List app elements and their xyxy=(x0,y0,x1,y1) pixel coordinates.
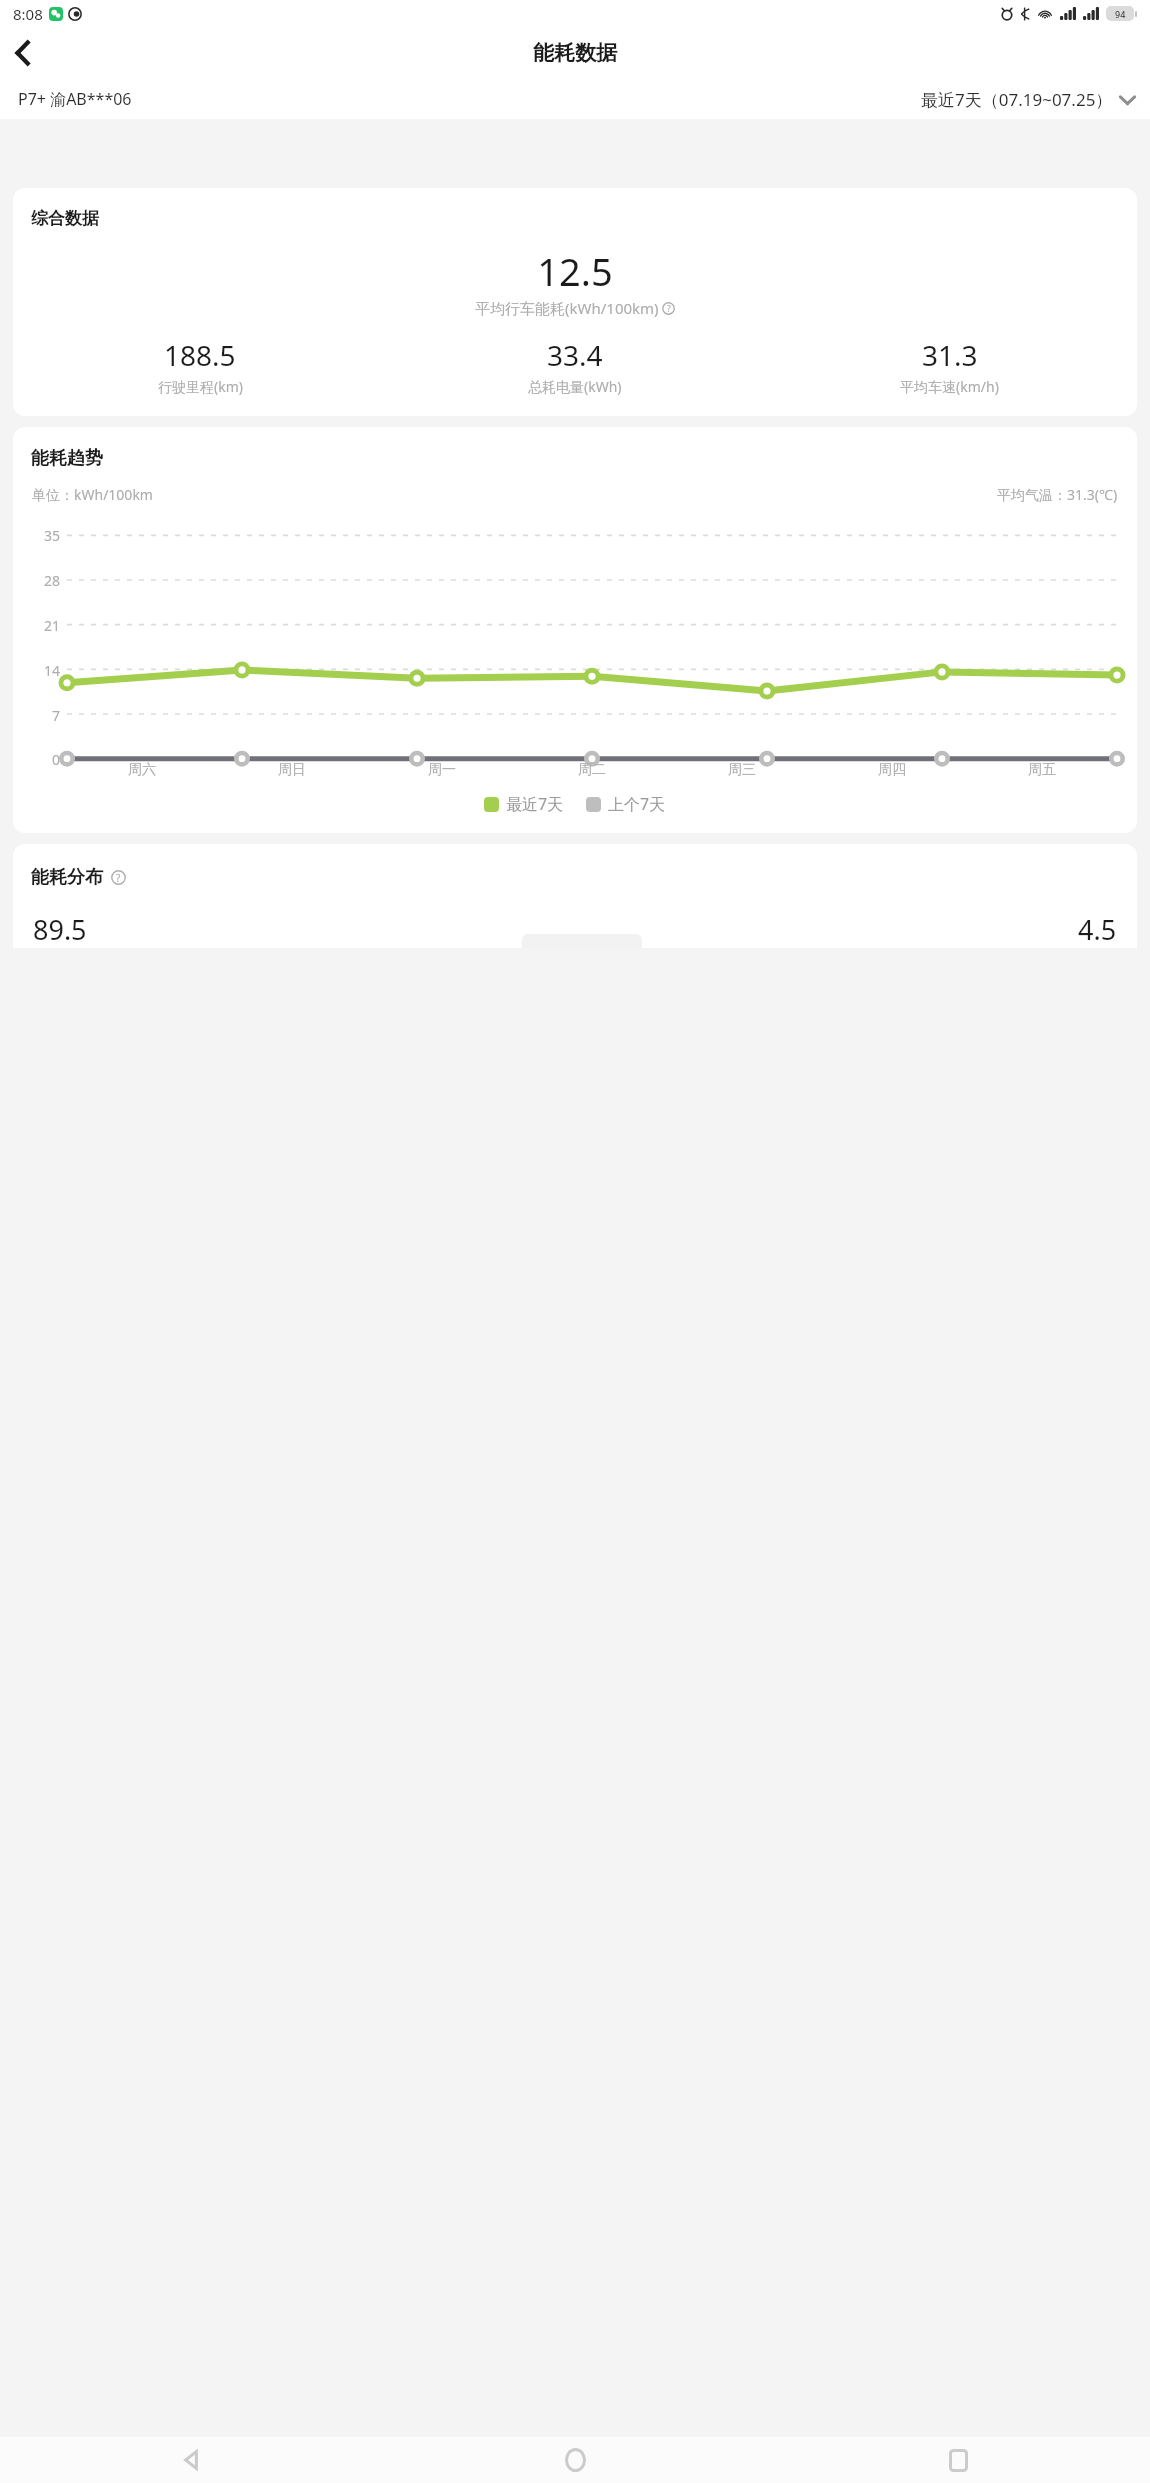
staticText: 周二 xyxy=(578,761,606,779)
staticText: 能耗趋势 xyxy=(31,447,103,470)
staticText: 最近7天（07.19~07.25） xyxy=(921,88,1113,111)
button[interactable]: Back xyxy=(0,31,44,75)
staticText: 平均车速(km/h) xyxy=(900,377,999,396)
staticText: 周日 xyxy=(278,761,306,779)
button[interactable]: Back xyxy=(0,2437,384,2483)
staticText: 12.5 xyxy=(13,245,1137,297)
staticText: 0 xyxy=(52,750,61,769)
button[interactable]: 最近7天（07.19~07.25） xyxy=(921,88,1136,111)
staticText: P7+ 渝AB***06 xyxy=(18,88,132,110)
staticText: 平均气温：31.3(℃) xyxy=(997,485,1118,504)
staticText: 8:08 xyxy=(13,4,43,24)
staticText: ? xyxy=(667,303,671,315)
staticText: 7 xyxy=(52,706,61,725)
staticText: 综合数据 xyxy=(31,208,99,229)
staticText: 188.5 xyxy=(164,336,236,374)
staticText: 94 xyxy=(1115,8,1126,20)
button[interactable]: Recents xyxy=(767,2437,1150,2483)
staticText: 单位：kWh/100km xyxy=(32,485,153,504)
staticText: 33.4 xyxy=(547,336,603,374)
staticText: 14 xyxy=(44,661,61,680)
staticText: 35 xyxy=(44,526,61,545)
staticText: 平均行车能耗(kWh/100km) xyxy=(475,298,659,318)
staticText: 周三 xyxy=(728,761,756,779)
staticText: 周一 xyxy=(428,761,456,779)
staticText: 能耗分布 xyxy=(31,866,103,889)
staticText: 4.5 xyxy=(1078,911,1117,948)
staticText: 31.3 xyxy=(922,336,978,374)
staticText: 总耗电量(kWh) xyxy=(528,377,622,396)
staticText: 最近7天 xyxy=(506,793,564,815)
staticText: 89.5 xyxy=(33,911,87,948)
staticText: 21 xyxy=(44,616,61,635)
staticText: 能耗数据 xyxy=(533,40,617,66)
staticText: 行驶里程(km) xyxy=(158,377,243,396)
staticText: 上个7天 xyxy=(608,793,666,815)
staticText: 周五 xyxy=(1028,761,1056,779)
staticText: 周四 xyxy=(878,761,906,779)
staticText: ? xyxy=(116,871,121,884)
staticText: 28 xyxy=(44,571,61,590)
staticText: 周六 xyxy=(128,761,156,779)
button[interactable]: Home xyxy=(384,2437,767,2483)
